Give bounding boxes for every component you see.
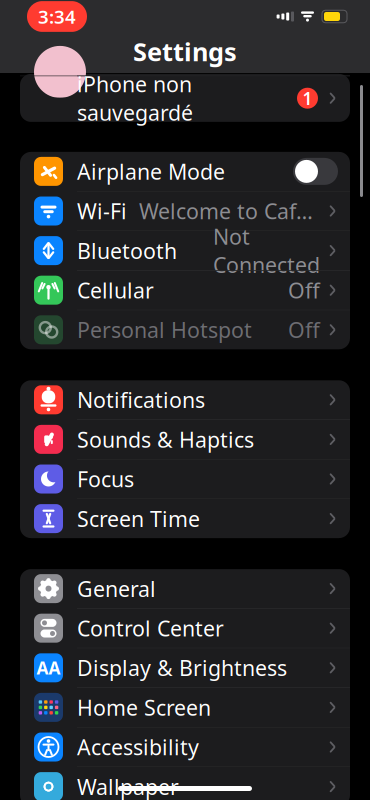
staticText: iPhone non sauvegardé bbox=[77, 70, 193, 127]
staticText: General bbox=[77, 574, 156, 603]
staticText: Not Connected bbox=[213, 222, 320, 279]
button[interactable]: General bbox=[20, 569, 350, 608]
staticText: Screen Time bbox=[77, 504, 200, 533]
button[interactable]: Bluetooth bbox=[20, 231, 350, 270]
button[interactable]: Wi-Fi bbox=[20, 191, 350, 230]
staticText: Notifications bbox=[77, 386, 205, 414]
staticText: Wallpaper bbox=[77, 772, 179, 800]
button[interactable]: Cellular bbox=[20, 271, 350, 310]
button[interactable]: Personal Hotspot bbox=[20, 310, 350, 349]
staticText: 3:34 bbox=[38, 4, 76, 29]
button[interactable]: Sounds & Haptics bbox=[20, 420, 350, 459]
button[interactable]: Wallpaper bbox=[20, 767, 350, 800]
staticText: 1 bbox=[302, 87, 312, 110]
staticText: Wi-Fi bbox=[77, 197, 127, 225]
staticText: Off bbox=[288, 276, 320, 304]
button[interactable]: AA bbox=[20, 648, 350, 687]
staticText: Airplane Mode bbox=[77, 157, 225, 185]
button[interactable]: Accessibility bbox=[20, 727, 350, 766]
staticText: Focus bbox=[77, 465, 134, 493]
button[interactable]: Screen Time bbox=[20, 499, 350, 538]
button[interactable]: Notifications bbox=[20, 380, 350, 419]
staticText: Welcome to Cafè JABAL ANNOUR… bbox=[127, 197, 322, 225]
staticText: Control Center bbox=[77, 614, 224, 642]
staticText: Home Screen bbox=[77, 693, 211, 721]
staticText: AA bbox=[36, 656, 60, 679]
staticText: Sounds & Haptics bbox=[77, 425, 254, 453]
button[interactable]: iPhone non sauvegardé bbox=[20, 79, 350, 118]
button[interactable]: Airplane Mode bbox=[20, 152, 350, 191]
staticText: Display & Brightness bbox=[77, 654, 287, 682]
staticText: Personal Hotspot bbox=[77, 316, 252, 344]
button[interactable]: Home Screen bbox=[20, 688, 350, 727]
staticText: Cellular bbox=[77, 276, 154, 304]
staticText: Accessibility bbox=[77, 733, 199, 761]
staticText: Settings bbox=[133, 35, 237, 68]
button[interactable]: Control Center bbox=[20, 609, 350, 648]
staticText: Bluetooth bbox=[77, 236, 177, 265]
button[interactable]: Focus bbox=[20, 459, 350, 498]
staticText: Off bbox=[288, 316, 320, 344]
